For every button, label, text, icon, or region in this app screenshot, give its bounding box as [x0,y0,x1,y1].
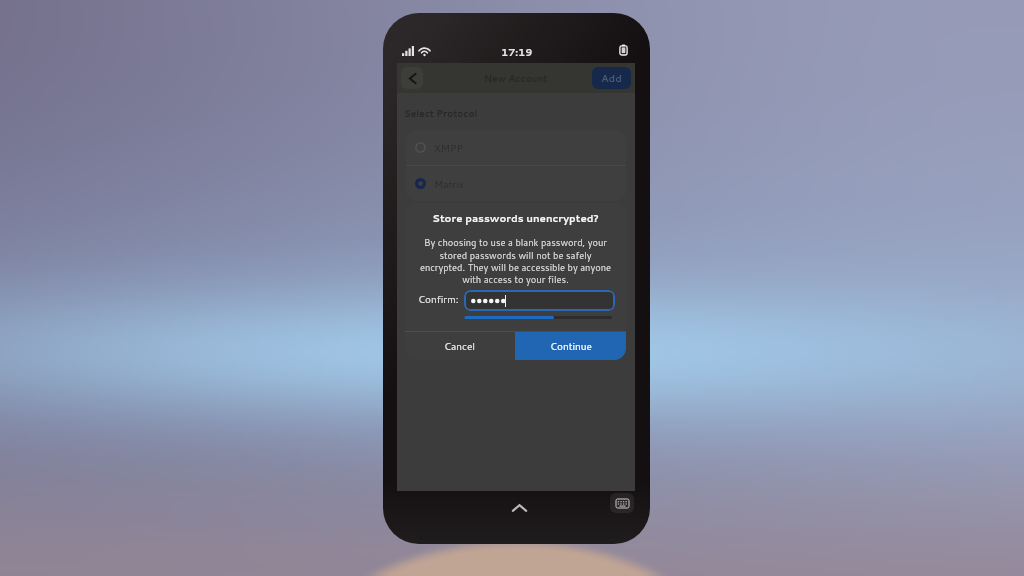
button[interactable]: Back [505,494,533,522]
staticText: Add [601,71,622,85]
staticText: New Account [484,72,548,85]
staticText: Matrix [434,177,464,191]
staticText: By choosing to use a blank password, you… [405,236,626,286]
staticText: Select Protocol [404,107,478,120]
staticText: Continue [550,339,592,353]
button[interactable]: Add [592,67,631,89]
button[interactable]: Keyboard [610,493,634,513]
button[interactable]: Back [401,67,423,89]
staticText: 17:19 [501,45,533,58]
staticText: Confirm: [418,292,459,306]
staticText: Store passwords unencrypted? [432,211,599,225]
staticText: XMPP [434,141,463,155]
button[interactable]: Cancel [405,332,515,360]
button[interactable]: Password [464,290,615,311]
button[interactable]: Matrix [406,166,626,201]
staticText: Cancel [444,339,476,353]
button[interactable]: Continue [515,332,626,360]
